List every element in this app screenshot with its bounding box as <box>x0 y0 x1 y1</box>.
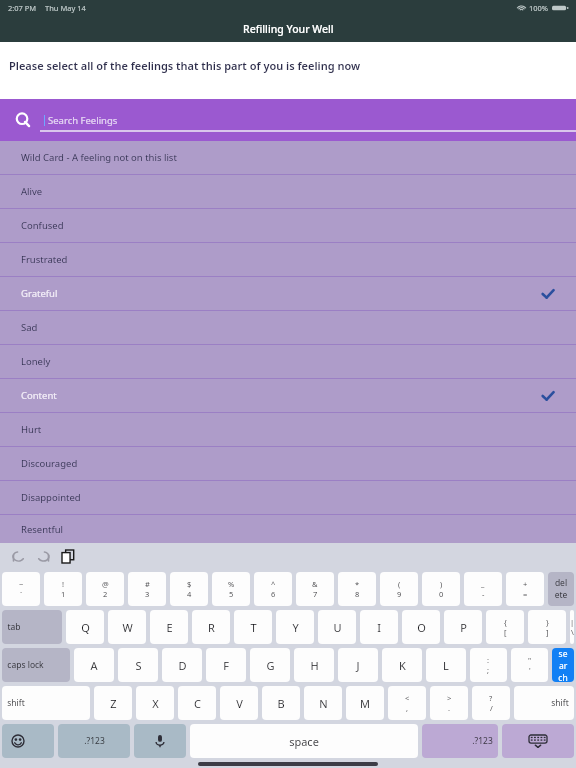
button[interactable]: M <box>346 686 384 720</box>
button[interactable]: F <box>206 648 246 682</box>
button[interactable]: .?123 <box>58 724 130 758</box>
button[interactable]: P <box>444 610 482 644</box>
button[interactable]: O <box>402 610 440 644</box>
staticText: Alive <box>21 185 43 198</box>
button[interactable]: ^ <box>254 572 292 606</box>
button[interactable]: & <box>296 572 334 606</box>
button[interactable]: V <box>220 686 258 720</box>
staticText: E <box>166 620 173 635</box>
staticText: space <box>289 734 319 749</box>
button[interactable]: + <box>506 572 544 606</box>
staticText: Thu May 14 <box>45 3 86 13</box>
button[interactable]: $ <box>170 572 208 606</box>
button[interactable]: Search Feelings <box>0 99 576 141</box>
button[interactable]: H <box>294 648 334 682</box>
button[interactable]: R <box>192 610 230 644</box>
button[interactable]: space <box>190 724 418 758</box>
button[interactable]: Voice input <box>134 724 186 758</box>
button[interactable]: Confused <box>0 209 576 242</box>
button[interactable]: tab <box>2 610 62 644</box>
button[interactable]: ? <box>472 686 510 720</box>
button[interactable]: W <box>108 610 146 644</box>
button[interactable]: Frustrated <box>0 243 576 276</box>
button[interactable]: ~ <box>2 572 40 606</box>
button[interactable]: < <box>388 686 426 720</box>
button[interactable]: Hide keyboard <box>502 724 574 758</box>
staticText: = <box>523 589 528 599</box>
button[interactable]: Content <box>0 379 576 412</box>
button[interactable]: J <box>338 648 378 682</box>
button[interactable]: S <box>118 648 158 682</box>
button[interactable]: Sad <box>0 311 576 344</box>
staticText: U <box>333 620 342 635</box>
staticText: W <box>122 620 133 635</box>
button[interactable]: N <box>304 686 342 720</box>
button[interactable]: .?123 <box>422 724 498 758</box>
button[interactable]: Z <box>94 686 132 720</box>
button[interactable]: # <box>128 572 166 606</box>
button[interactable]: B <box>262 686 300 720</box>
staticText: P <box>460 620 467 635</box>
button[interactable]: D <box>162 648 202 682</box>
staticText: D <box>178 658 187 673</box>
button[interactable]: : <box>470 648 507 682</box>
staticText: X <box>152 696 159 711</box>
button[interactable]: Emoji <box>2 724 54 758</box>
button[interactable]: ! <box>44 572 82 606</box>
button[interactable]: U <box>318 610 356 644</box>
button[interactable]: > <box>430 686 468 720</box>
staticText: \ <box>571 627 574 637</box>
staticText: 4 <box>187 589 192 599</box>
button[interactable]: @ <box>86 572 124 606</box>
button[interactable]: Grateful <box>0 277 576 310</box>
button[interactable]: delete <box>548 572 574 606</box>
staticText: search <box>557 648 569 682</box>
button[interactable]: Alive <box>0 175 576 208</box>
staticText: " <box>528 655 532 665</box>
staticText: 100% <box>529 3 549 13</box>
button[interactable]: Q <box>66 610 104 644</box>
button[interactable]: shift <box>514 686 574 720</box>
button[interactable]: C <box>178 686 216 720</box>
button[interactable]: _ <box>464 572 502 606</box>
button[interactable]: ( <box>380 572 418 606</box>
button[interactable]: { <box>486 610 524 644</box>
button[interactable]: X <box>136 686 174 720</box>
button[interactable]: Paste <box>62 550 75 563</box>
staticText: Disappointed <box>21 491 81 504</box>
button[interactable]: T <box>234 610 272 644</box>
button[interactable]: % <box>212 572 250 606</box>
button[interactable]: * <box>338 572 376 606</box>
button[interactable]: Redo <box>36 550 50 564</box>
button[interactable]: Lonely <box>0 345 576 378</box>
staticText: K <box>399 658 406 673</box>
staticText: @ <box>102 579 109 589</box>
staticText: 9 <box>397 589 402 599</box>
button[interactable]: Discouraged <box>0 447 576 480</box>
button[interactable]: Disappointed <box>0 481 576 514</box>
button[interactable]: E <box>150 610 188 644</box>
button[interactable]: L <box>426 648 466 682</box>
button[interactable]: Resentful <box>0 515 576 543</box>
button[interactable]: search <box>552 648 574 682</box>
staticText: J <box>356 658 360 673</box>
button[interactable]: | <box>570 610 574 644</box>
button[interactable]: Wild Card - A feeling not on this list <box>0 141 576 174</box>
button[interactable]: G <box>250 648 290 682</box>
staticText: 6 <box>271 589 276 599</box>
button[interactable]: I <box>360 610 398 644</box>
button[interactable]: Hurt <box>0 413 576 446</box>
button[interactable]: Y <box>276 610 314 644</box>
staticText: R <box>208 620 215 635</box>
staticText: Frustrated <box>21 253 68 266</box>
button[interactable]: caps lock <box>2 648 70 682</box>
button[interactable]: " <box>511 648 548 682</box>
button[interactable]: shift <box>2 686 90 720</box>
button[interactable]: ) <box>422 572 460 606</box>
button[interactable]: Undo <box>12 550 26 564</box>
button[interactable]: A <box>74 648 114 682</box>
button[interactable]: } <box>528 610 566 644</box>
staticText: 3 <box>145 589 150 599</box>
staticText: Lonely <box>21 355 51 368</box>
button[interactable]: K <box>382 648 422 682</box>
